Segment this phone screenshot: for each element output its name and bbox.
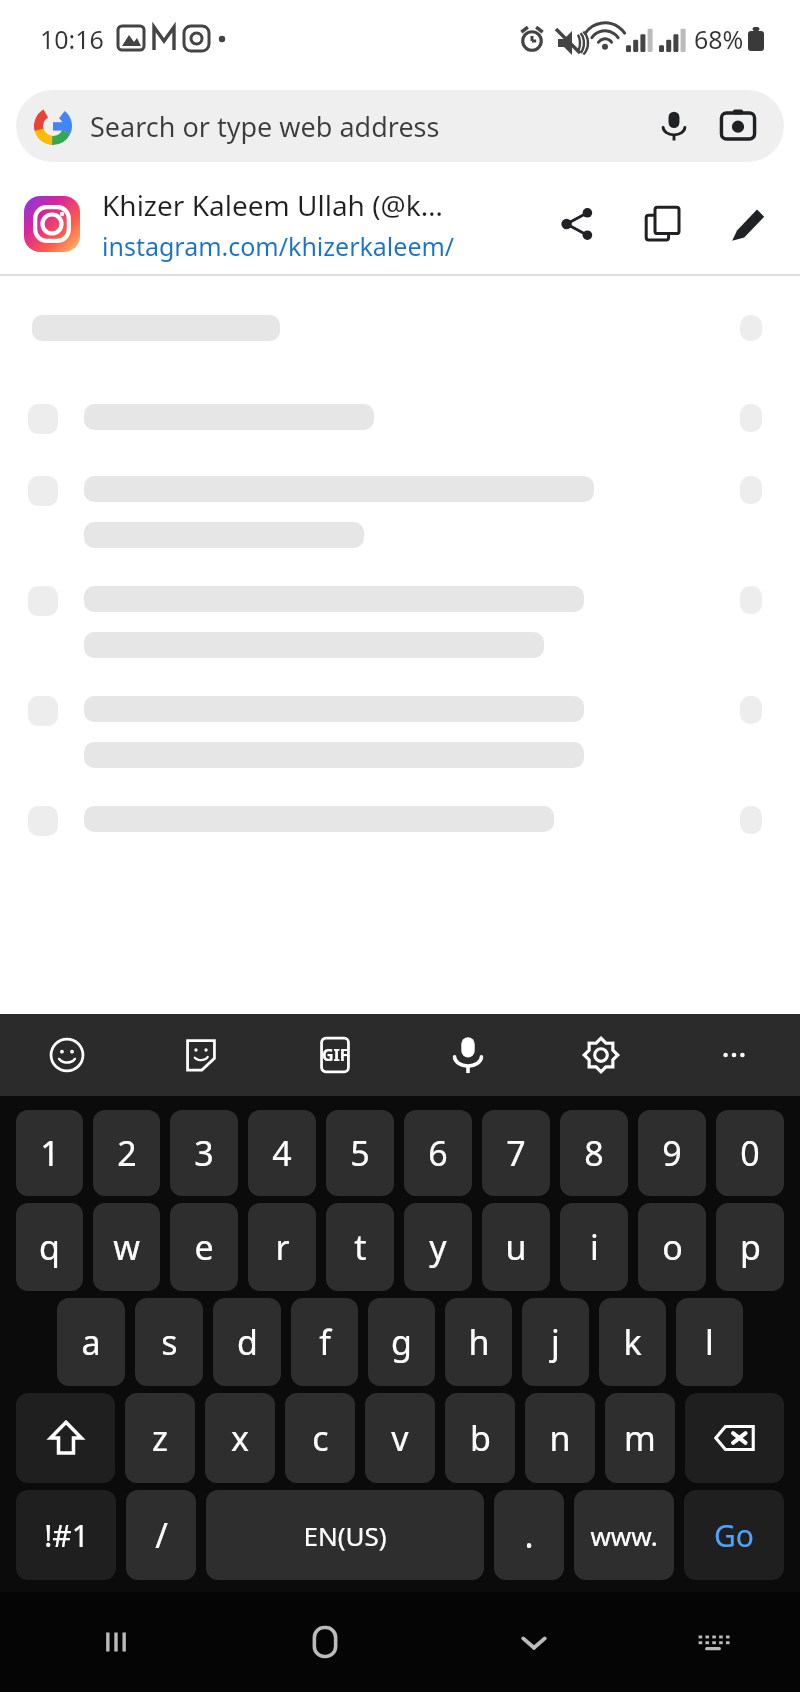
button[interactable]: EN(US) xyxy=(206,1490,484,1580)
staticText: o xyxy=(662,1224,683,1270)
staticText: q xyxy=(39,1224,60,1270)
button[interactable]: m xyxy=(605,1393,675,1483)
button[interactable]: q xyxy=(16,1203,83,1291)
button[interactable]: p xyxy=(716,1203,784,1291)
button[interactable]: g xyxy=(368,1298,435,1386)
button[interactable]: w xyxy=(93,1203,160,1291)
staticText: 2 xyxy=(117,1130,137,1176)
button[interactable]: e xyxy=(170,1203,238,1291)
button[interactable]: y xyxy=(404,1203,472,1291)
button[interactable]: Khizer Kaleem Ullah (@k… xyxy=(0,174,800,274)
staticText: 10:16 xyxy=(40,22,104,56)
button[interactable]: / xyxy=(126,1490,196,1580)
staticText: y xyxy=(429,1224,447,1270)
button[interactable]: 8 xyxy=(560,1110,628,1196)
staticText: j xyxy=(551,1319,560,1365)
button[interactable]: more options xyxy=(667,1014,800,1096)
button[interactable]: t xyxy=(326,1203,394,1291)
staticText: r xyxy=(275,1224,290,1270)
staticText: www. xyxy=(590,1518,658,1553)
staticText: d xyxy=(237,1319,258,1365)
button[interactable]: h xyxy=(445,1298,512,1386)
staticText: 5 xyxy=(350,1130,370,1176)
staticText: Go xyxy=(714,1515,754,1556)
button[interactable]: o xyxy=(638,1203,706,1291)
staticText: h xyxy=(468,1319,490,1365)
button[interactable]: n xyxy=(525,1393,595,1483)
button[interactable]: settings xyxy=(534,1014,667,1096)
staticText: b xyxy=(470,1415,491,1461)
button[interactable]: 6 xyxy=(404,1110,472,1196)
staticText: 68% xyxy=(694,22,744,56)
button[interactable]: . xyxy=(494,1490,564,1580)
button[interactable]: a xyxy=(57,1298,125,1386)
button[interactable]: z xyxy=(125,1393,195,1483)
button[interactable]: 9 xyxy=(638,1110,706,1196)
staticText: t xyxy=(354,1224,367,1270)
button[interactable]: !#1 xyxy=(16,1490,116,1580)
staticText: m xyxy=(624,1415,656,1461)
button[interactable]: r xyxy=(248,1203,316,1291)
staticText: c xyxy=(312,1415,329,1461)
button[interactable]: 7 xyxy=(482,1110,550,1196)
staticText: 7 xyxy=(506,1130,526,1176)
button[interactable]: j xyxy=(522,1298,589,1386)
button[interactable]: 2 xyxy=(93,1110,160,1196)
button[interactable]: voice input xyxy=(401,1014,534,1096)
button[interactable]: b xyxy=(445,1393,515,1483)
button[interactable]: Shift xyxy=(16,1393,115,1483)
button[interactable]: l xyxy=(676,1298,743,1386)
button[interactable]: Recent apps xyxy=(71,1597,161,1687)
staticText: Khizer Kaleem Ullah (@k… xyxy=(102,186,443,224)
staticText: !#1 xyxy=(44,1515,89,1556)
button[interactable]: u xyxy=(482,1203,550,1291)
staticText: x xyxy=(231,1415,249,1461)
button[interactable]: Go xyxy=(684,1490,784,1580)
staticText: . xyxy=(524,1512,534,1558)
staticText: z xyxy=(152,1415,168,1461)
staticText: GIF xyxy=(322,1044,349,1066)
button[interactable]: emoji xyxy=(0,1014,134,1096)
button[interactable]: Search or type web address xyxy=(16,90,784,162)
staticText: a xyxy=(81,1319,101,1365)
button[interactable]: Voice search xyxy=(642,94,706,158)
staticText: 0 xyxy=(740,1130,760,1176)
button[interactable]: 4 xyxy=(248,1110,316,1196)
button[interactable]: Home xyxy=(280,1597,370,1687)
button[interactable]: x xyxy=(205,1393,275,1483)
button[interactable]: Share xyxy=(534,181,620,267)
button[interactable]: i xyxy=(560,1203,628,1291)
button[interactable]: Hide keyboard xyxy=(489,1597,579,1687)
button[interactable]: 5 xyxy=(326,1110,394,1196)
staticText: f xyxy=(319,1319,331,1365)
button[interactable]: 1 xyxy=(16,1110,83,1196)
staticText: g xyxy=(391,1319,412,1365)
staticText: n xyxy=(549,1415,571,1461)
button[interactable]: GIF xyxy=(268,1014,401,1096)
button[interactable]: www. xyxy=(574,1490,674,1580)
button[interactable]: f xyxy=(291,1298,358,1386)
button[interactable]: Copy xyxy=(620,181,706,267)
staticText: i xyxy=(590,1224,599,1270)
staticText: 3 xyxy=(194,1130,214,1176)
staticText: / xyxy=(155,1512,168,1558)
button[interactable]: s xyxy=(135,1298,203,1386)
button[interactable]: Backspace xyxy=(685,1393,784,1483)
button[interactable]: Edit xyxy=(706,181,792,267)
button[interactable]: Change keyboard xyxy=(668,1597,758,1687)
button[interactable]: 0 xyxy=(716,1110,784,1196)
button[interactable]: sticker xyxy=(134,1014,268,1096)
button[interactable]: d xyxy=(213,1298,281,1386)
button[interactable]: k xyxy=(599,1298,666,1386)
button[interactable]: c xyxy=(285,1393,355,1483)
staticText: 1 xyxy=(40,1130,60,1176)
staticText: v xyxy=(391,1415,409,1461)
staticText: w xyxy=(113,1224,140,1270)
staticText: p xyxy=(740,1224,761,1270)
button[interactable]: 3 xyxy=(170,1110,238,1196)
staticText: Search or type web address xyxy=(90,108,642,145)
button[interactable]: Search with camera xyxy=(706,94,770,158)
button[interactable]: v xyxy=(365,1393,435,1483)
staticText: 4 xyxy=(272,1130,292,1176)
staticText: l xyxy=(705,1319,714,1365)
